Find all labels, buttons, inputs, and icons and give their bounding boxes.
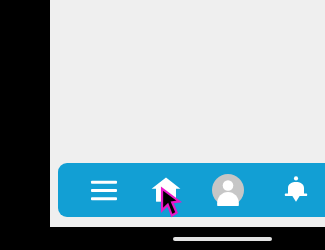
button[interactable]: Home <box>142 166 190 214</box>
button[interactable]: Notifications <box>272 166 320 214</box>
button[interactable]: Profile <box>204 166 252 214</box>
button[interactable]: Menu <box>80 166 128 214</box>
